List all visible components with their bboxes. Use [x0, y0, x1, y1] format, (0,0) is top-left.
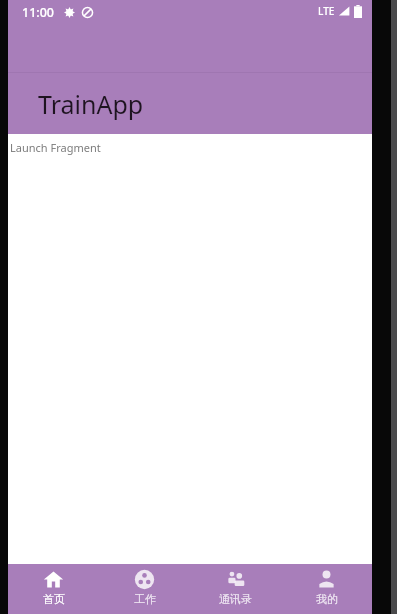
staticText: 工作: [134, 592, 156, 606]
staticText: LTE: [318, 4, 335, 18]
button[interactable]: 通讯录: [190, 564, 281, 614]
staticText: Launch Fragment: [10, 140, 101, 155]
staticText: 11:00: [22, 4, 55, 21]
staticText: 我的: [316, 592, 338, 606]
button[interactable]: 首页: [8, 564, 99, 614]
button[interactable]: 我的: [281, 564, 372, 614]
staticText: TrainApp: [38, 87, 144, 121]
staticText: 通讯录: [219, 592, 252, 606]
button[interactable]: 工作: [99, 564, 190, 614]
staticText: 首页: [43, 592, 65, 606]
